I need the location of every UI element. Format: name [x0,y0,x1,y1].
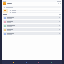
button[interactable] [3,24,61,27]
button[interactable] [3,16,61,19]
button[interactable]: Home [11,60,15,64]
button[interactable] [3,20,61,23]
button[interactable]: Favourites [36,60,40,64]
button[interactable]: Profile [49,60,53,64]
button[interactable] [3,32,61,35]
button[interactable]: More options [58,3,61,4]
button[interactable] [9,12,61,13]
button[interactable]: Explore [24,60,28,64]
button[interactable] [3,9,8,13]
button[interactable] [9,10,61,11]
button[interactable]: Menu [3,2,6,5]
button[interactable]: Search [3,6,61,8]
button[interactable] [3,28,61,31]
